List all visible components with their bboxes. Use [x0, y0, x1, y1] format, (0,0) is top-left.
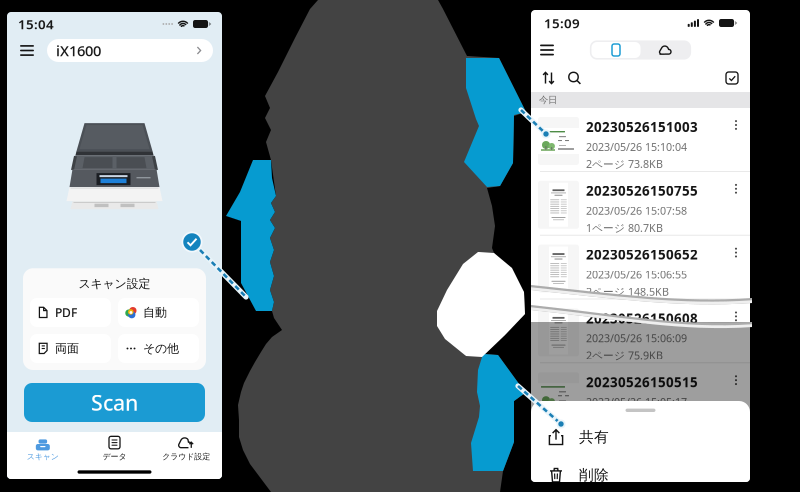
button[interactable]: 共有: [531, 418, 750, 456]
staticText: 15:09: [544, 14, 580, 32]
button[interactable]: 20230526151003: [531, 108, 750, 171]
staticText: スキャン設定: [78, 276, 150, 291]
button[interactable]: Scan: [24, 383, 205, 422]
button[interactable]: 両面: [30, 334, 111, 363]
button[interactable]: クラウド設定: [150, 432, 222, 465]
staticText: その他: [143, 341, 179, 356]
staticText: 2ページ 148.5KB: [586, 284, 669, 299]
button[interactable]: Cloud files: [640, 42, 689, 58]
button[interactable]: 20230526150515: [531, 363, 750, 426]
staticText: 今日: [539, 94, 557, 106]
staticText: スキャン: [27, 452, 59, 461]
button[interactable]: スキャン: [7, 432, 79, 465]
button[interactable]: データ: [79, 432, 150, 465]
button[interactable]: Sort: [536, 67, 561, 89]
staticText: 20230526150652: [586, 246, 698, 263]
button[interactable]: 削除: [531, 456, 750, 492]
staticText: 20230526151003: [586, 118, 698, 136]
button[interactable]: 20230526150608: [531, 299, 750, 362]
staticText: クラウド設定: [162, 452, 210, 461]
staticText: 2023/05/26 15:05:17: [586, 395, 687, 409]
button[interactable]: Search: [562, 67, 587, 89]
staticText: データ: [102, 452, 126, 461]
button[interactable]: Menu: [535, 38, 559, 62]
staticText: 2023/05/26 15:06:55: [586, 267, 687, 281]
button[interactable]: Menu: [16, 39, 38, 61]
staticText: PDF: [55, 304, 77, 320]
button[interactable]: Select: [721, 67, 743, 89]
staticText: 1ページ 80.7KB: [586, 221, 663, 235]
staticText: 削除: [579, 466, 609, 484]
button[interactable]: PDF: [30, 298, 111, 327]
staticText: Scan: [91, 388, 138, 417]
staticText: iX1600: [56, 41, 101, 60]
staticText: 20230526150608: [586, 309, 698, 327]
button[interactable]: 20230526150755: [531, 172, 750, 235]
button[interactable]: iX1600: [47, 39, 213, 62]
staticText: 2ページ 75.9KB: [586, 348, 663, 362]
button[interactable]: その他: [118, 334, 199, 363]
staticText: 20230526150755: [586, 182, 698, 199]
staticText: 20230526150515: [586, 373, 698, 391]
button[interactable]: 20230526150652: [531, 236, 750, 299]
staticText: 2023/05/26 15:07:58: [586, 203, 687, 218]
staticText: 自動: [143, 305, 167, 320]
staticText: 2023/05/26 15:06:09: [586, 331, 687, 345]
staticText: 両面: [55, 341, 79, 356]
staticText: 2ページ 73.8KB: [586, 157, 663, 171]
button[interactable]: 自動: [118, 298, 199, 327]
button[interactable]: Device files: [591, 42, 640, 58]
staticText: 2023/05/26 15:10:04: [586, 140, 687, 154]
staticText: 共有: [579, 428, 609, 446]
staticText: 15:04: [18, 15, 54, 33]
